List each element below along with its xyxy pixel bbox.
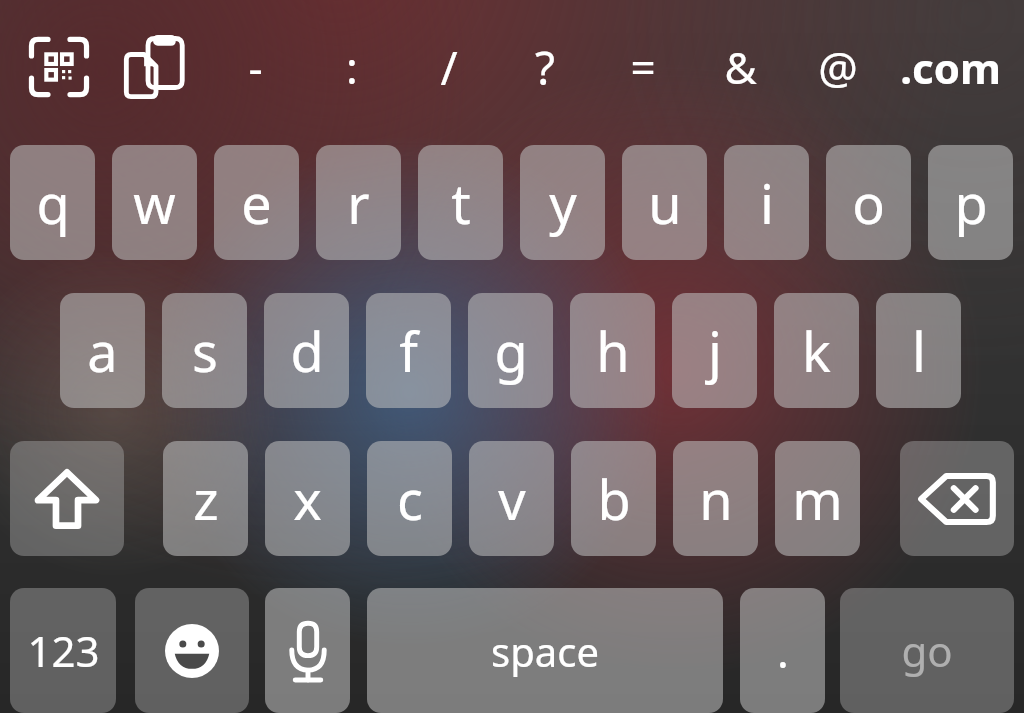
staticText: f bbox=[399, 314, 418, 388]
button[interactable]: l bbox=[876, 293, 961, 408]
button[interactable]: z bbox=[163, 441, 248, 556]
staticText: h bbox=[596, 314, 630, 388]
button[interactable]: d bbox=[264, 293, 349, 408]
button[interactable]: y bbox=[520, 145, 605, 260]
button[interactable]: v bbox=[469, 441, 554, 556]
staticText: n bbox=[699, 462, 733, 536]
staticText: a bbox=[87, 314, 118, 388]
button[interactable]: h bbox=[570, 293, 655, 408]
button[interactable]: = bbox=[608, 26, 678, 108]
button[interactable]: - bbox=[220, 26, 290, 108]
button[interactable]: s bbox=[162, 293, 247, 408]
staticText: @ bbox=[818, 37, 858, 97]
staticText: d bbox=[290, 314, 324, 388]
staticText: q bbox=[36, 166, 70, 240]
button[interactable]: j bbox=[672, 293, 757, 408]
button[interactable]: m bbox=[775, 441, 860, 556]
button[interactable]: p bbox=[928, 145, 1013, 260]
button[interactable]: i bbox=[724, 145, 809, 260]
staticText: y bbox=[549, 166, 577, 240]
staticText: / bbox=[440, 36, 458, 99]
button[interactable]: space bbox=[367, 588, 723, 713]
staticText: p bbox=[954, 166, 988, 240]
staticText: b bbox=[597, 462, 631, 536]
staticText: w bbox=[133, 166, 176, 240]
staticText: m bbox=[792, 462, 843, 536]
button[interactable]: Clipboard bbox=[120, 28, 192, 106]
staticText: l bbox=[912, 314, 926, 388]
staticText: k bbox=[802, 314, 831, 388]
staticText: i bbox=[760, 166, 774, 240]
staticText: u bbox=[648, 166, 682, 240]
button[interactable]: e bbox=[214, 145, 299, 260]
button[interactable]: . bbox=[740, 588, 825, 713]
staticText: go bbox=[901, 622, 953, 679]
staticText: - bbox=[248, 37, 263, 97]
button[interactable]: k bbox=[774, 293, 859, 408]
staticText: . bbox=[777, 621, 789, 681]
staticText: & bbox=[724, 37, 757, 97]
button[interactable]: c bbox=[367, 441, 452, 556]
button[interactable]: Scan QR code bbox=[22, 31, 96, 103]
staticText: t bbox=[451, 166, 471, 240]
button[interactable]: b bbox=[571, 441, 656, 556]
button[interactable]: t bbox=[418, 145, 503, 260]
staticText: o bbox=[852, 166, 885, 240]
button[interactable]: Voice input bbox=[265, 588, 350, 713]
button[interactable]: f bbox=[366, 293, 451, 408]
button[interactable]: / bbox=[414, 26, 484, 108]
staticText: ? bbox=[535, 36, 555, 99]
staticText: : bbox=[346, 37, 358, 97]
button[interactable]: ? bbox=[510, 26, 580, 108]
staticText: e bbox=[241, 166, 272, 240]
button[interactable]: n bbox=[673, 441, 758, 556]
button[interactable]: Backspace bbox=[900, 441, 1014, 556]
button[interactable]: a bbox=[60, 293, 145, 408]
staticText: = bbox=[630, 37, 656, 97]
button[interactable]: Shift bbox=[10, 441, 124, 556]
staticText: s bbox=[192, 314, 218, 388]
button[interactable]: .com bbox=[885, 26, 1015, 108]
staticText: z bbox=[193, 462, 219, 536]
button[interactable]: 123 bbox=[10, 588, 116, 713]
staticText: space bbox=[491, 624, 599, 678]
staticText: c bbox=[397, 462, 423, 536]
button[interactable]: : bbox=[317, 26, 387, 108]
button[interactable]: x bbox=[265, 441, 350, 556]
button[interactable]: g bbox=[468, 293, 553, 408]
button[interactable]: o bbox=[826, 145, 911, 260]
button[interactable]: & bbox=[705, 26, 775, 108]
staticText: j bbox=[708, 314, 722, 388]
staticText: g bbox=[494, 314, 528, 388]
button[interactable]: go bbox=[840, 588, 1014, 713]
button[interactable]: Emoji bbox=[135, 588, 249, 713]
staticText: .com bbox=[900, 39, 1001, 96]
button[interactable]: @ bbox=[803, 26, 873, 108]
staticText: r bbox=[347, 166, 370, 240]
staticText: 123 bbox=[27, 622, 100, 679]
button[interactable]: r bbox=[316, 145, 401, 260]
button[interactable]: u bbox=[622, 145, 707, 260]
staticText: x bbox=[293, 462, 322, 536]
button[interactable]: w bbox=[112, 145, 197, 260]
button[interactable]: q bbox=[10, 145, 95, 260]
staticText: v bbox=[498, 462, 526, 536]
